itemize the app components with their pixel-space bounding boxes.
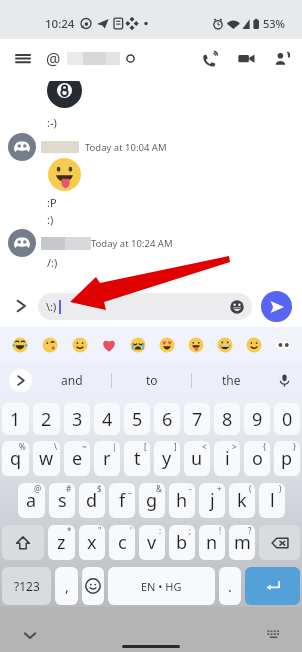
button[interactable]: ) [259, 483, 285, 518]
button[interactable]: More suggestions [9, 369, 32, 392]
staticText: , [65, 577, 69, 596]
staticText: l [270, 488, 275, 513]
button[interactable]: to [112, 363, 191, 397]
button[interactable]: Emoji suggestion 5 [123, 327, 152, 363]
button[interactable]: Start voice call [192, 39, 228, 78]
button[interactable]: and [32, 363, 111, 397]
button[interactable]: Emoji suggestion 7 [181, 327, 210, 363]
button[interactable]: Show actions [8, 293, 34, 319]
button[interactable]: } [274, 441, 300, 476]
button[interactable]: 8 [214, 403, 240, 435]
button[interactable]: 1 [2, 403, 29, 435]
staticText: h [176, 488, 188, 513]
staticText: > [232, 441, 237, 452]
button[interactable]: ' [109, 525, 135, 560]
button[interactable]: 2 [33, 403, 60, 435]
button[interactable]: Enter [245, 567, 300, 605]
button[interactable]: Send message [261, 291, 292, 322]
staticText: Today at 10:04 AM [85, 141, 167, 154]
button[interactable]: Emoji suggestion 3 [65, 327, 94, 363]
button[interactable]: the [192, 363, 271, 397]
button[interactable]: _ [109, 483, 135, 518]
staticText: e [72, 446, 83, 471]
button[interactable]: ( [229, 483, 255, 518]
staticText: 3 [72, 407, 83, 432]
button[interactable]: Emoji suggestion 9 [239, 327, 268, 363]
staticText: m [234, 530, 251, 555]
staticText: 53% [263, 16, 285, 31]
button[interactable]: ; [169, 525, 195, 560]
button[interactable]: Voice input [271, 367, 297, 393]
button[interactable]: ? [229, 525, 255, 560]
staticText: y [162, 446, 172, 471]
button[interactable]: ] [154, 441, 180, 476]
button[interactable]: * [48, 525, 75, 560]
staticText: \:) [46, 299, 57, 314]
button[interactable]: Open navigation menu [8, 39, 38, 78]
staticText: q [10, 446, 22, 471]
button[interactable]: Emoji suggestion 8 [210, 327, 239, 363]
staticText: k [237, 488, 247, 513]
staticText: 7 [192, 407, 203, 432]
button[interactable]: Emoji suggestion 6 [152, 327, 181, 363]
button[interactable]: Add member [264, 39, 300, 78]
staticText: @ [46, 48, 61, 70]
staticText: w [39, 446, 54, 471]
staticText: & [156, 483, 162, 494]
button[interactable]: - [169, 483, 195, 518]
button[interactable]: Switch input method [262, 623, 284, 645]
button[interactable]: \ [33, 441, 60, 476]
button[interactable]: ~ [64, 441, 90, 476]
button[interactable]: EN • HG [108, 567, 215, 605]
staticText: 2 [41, 407, 52, 432]
button[interactable]: Emoji suggestion 2 [35, 327, 65, 363]
button[interactable]: # [49, 483, 75, 518]
button[interactable]: | [94, 441, 120, 476]
button[interactable]: % [2, 441, 29, 476]
button[interactable]: 7 [184, 403, 210, 435]
staticText: and [61, 372, 83, 388]
staticText: ! [219, 525, 222, 536]
button[interactable]: \:) [38, 293, 252, 320]
button[interactable]: 6 [154, 403, 180, 435]
staticText: u [191, 446, 203, 471]
button[interactable]: Hide keyboard [18, 623, 42, 647]
button[interactable]: Shift [2, 525, 44, 560]
button[interactable]: , [55, 567, 78, 605]
staticText: p [281, 446, 293, 471]
staticText: b [176, 530, 188, 555]
staticText: EN • HG [141, 579, 182, 594]
button[interactable]: < [184, 441, 210, 476]
button[interactable]: Emoji suggestion 1 [5, 327, 35, 363]
button[interactable]: @ [18, 483, 45, 518]
staticText: $ [97, 483, 102, 494]
button[interactable]: Emoji keyboard [82, 567, 104, 605]
button[interactable]: 3 [64, 403, 90, 435]
button[interactable]: Start video call [228, 39, 264, 78]
staticText: t [134, 446, 141, 471]
button[interactable]: > [214, 441, 240, 476]
button[interactable]: " [79, 525, 105, 560]
button[interactable]: Emoji suggestion 10 [268, 327, 297, 363]
staticText: r [103, 446, 111, 471]
staticText: /:) [47, 255, 58, 270]
button[interactable]: : [139, 525, 165, 560]
staticText: ( [249, 483, 252, 494]
button[interactable]: Backspace [259, 525, 300, 560]
button[interactable]: ?123 [2, 567, 51, 605]
staticText: - [189, 483, 192, 494]
button[interactable]: . [219, 567, 241, 605]
button[interactable]: $ [79, 483, 105, 518]
button[interactable]: 5 [124, 403, 150, 435]
button[interactable]: 0 [274, 403, 300, 435]
button[interactable]: Emoji suggestion 4 [94, 327, 123, 363]
button[interactable]: 9 [244, 403, 270, 435]
button[interactable]: [ [124, 441, 150, 476]
button[interactable]: 4 [94, 403, 120, 435]
button[interactable]: & [139, 483, 165, 518]
button[interactable]: + [199, 483, 225, 518]
staticText: * [67, 525, 72, 536]
button[interactable]: Choose emoji [228, 298, 246, 316]
button[interactable]: ! [199, 525, 225, 560]
button[interactable]: { [244, 441, 270, 476]
